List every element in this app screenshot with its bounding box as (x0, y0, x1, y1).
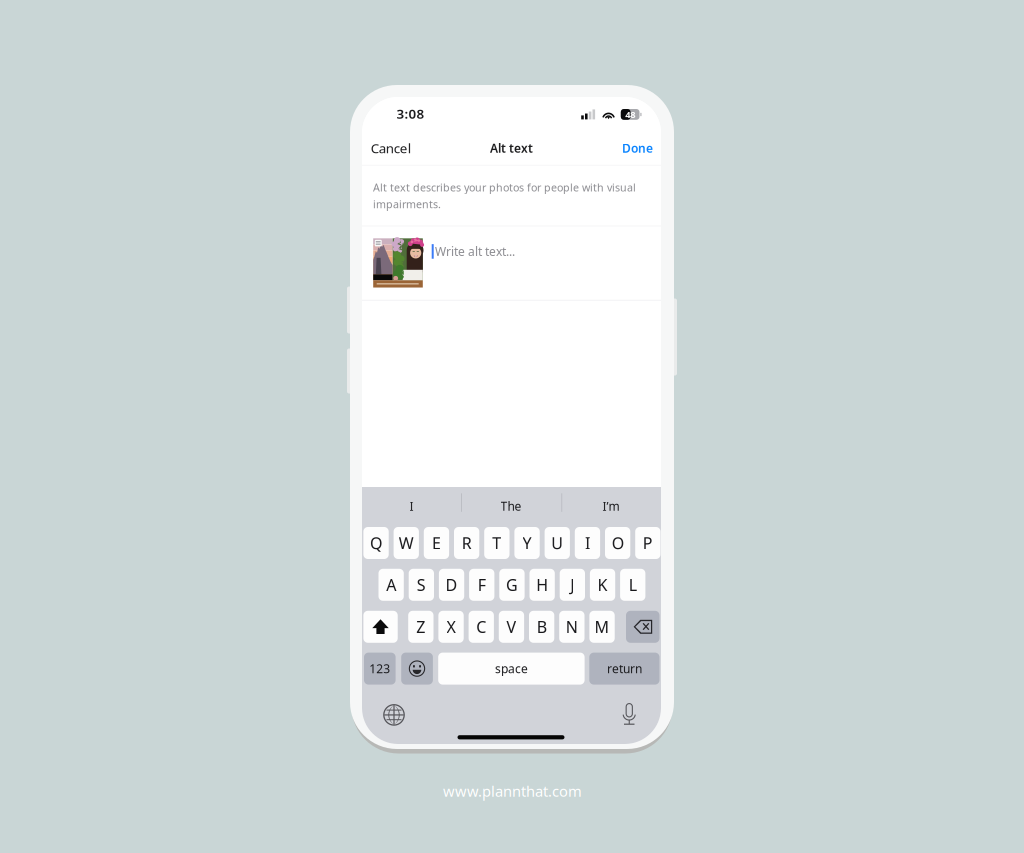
staticText: The (501, 498, 522, 514)
staticText: I (409, 498, 413, 514)
staticText: A (386, 574, 396, 595)
staticText: J (570, 574, 574, 595)
button[interactable]: I’m (561, 487, 660, 525)
staticText: space (495, 661, 528, 676)
staticText: W (399, 532, 414, 554)
button[interactable]: T (484, 527, 509, 559)
button[interactable]: K (590, 569, 615, 601)
staticText: 3:08 (397, 105, 425, 122)
staticText: D (445, 574, 457, 595)
button[interactable]: S (409, 569, 434, 601)
button[interactable]: Shift (363, 611, 398, 643)
button[interactable]: Q (363, 527, 389, 559)
button[interactable]: D (439, 569, 464, 601)
staticText: M (594, 616, 609, 637)
button[interactable]: B (529, 611, 554, 643)
button[interactable]: E (424, 527, 449, 559)
button[interactable]: Done (613, 131, 653, 165)
staticText: H (536, 574, 548, 595)
button[interactable]: F (469, 569, 494, 601)
button[interactable]: Cancel (371, 131, 427, 165)
staticText: T (492, 532, 501, 554)
button[interactable]: A (378, 569, 404, 601)
staticText: impairments. (373, 197, 441, 211)
staticText: L (629, 574, 637, 595)
staticText: X (446, 616, 455, 637)
button[interactable]: Y (514, 527, 540, 559)
staticText: 123 (369, 661, 390, 676)
staticText: I’m (602, 498, 619, 514)
staticText: return (607, 661, 642, 676)
staticText: Done (622, 140, 653, 156)
button[interactable]: 123 (364, 653, 396, 685)
staticText: I (585, 532, 590, 554)
staticText: G (506, 574, 518, 595)
button[interactable]: G (499, 569, 525, 601)
button[interactable]: Dictate (622, 703, 637, 725)
staticText: Z (416, 616, 425, 637)
button[interactable]: M (589, 611, 615, 643)
staticText: U (551, 532, 563, 554)
staticText: Alt text (490, 140, 533, 156)
button[interactable]: Z (408, 611, 433, 643)
button[interactable]: X (438, 611, 464, 643)
button[interactable]: P (635, 527, 660, 559)
staticText: K (597, 574, 607, 595)
button[interactable]: N (559, 611, 584, 643)
button[interactable]: Emoji (401, 653, 433, 685)
staticText: B (537, 616, 547, 637)
staticText: 48 (625, 108, 635, 121)
button[interactable]: I (362, 487, 461, 525)
staticText: Y (522, 532, 531, 554)
button[interactable]: The (461, 487, 561, 525)
staticText: O (612, 532, 624, 554)
staticText: S (417, 574, 426, 595)
button[interactable]: C (469, 611, 494, 643)
staticText: P (643, 532, 653, 554)
button[interactable]: H (529, 569, 555, 601)
button[interactable]: space (438, 653, 585, 685)
staticText: Q (370, 532, 382, 554)
staticText: R (462, 532, 472, 554)
staticText: F (478, 574, 486, 595)
button[interactable]: Delete (626, 611, 659, 643)
button[interactable]: U (545, 527, 570, 559)
staticText: V (506, 616, 516, 637)
staticText: Cancel (371, 139, 411, 157)
button[interactable]: Next keyboard (383, 704, 405, 725)
staticText: C (476, 616, 486, 637)
button[interactable]: O (605, 527, 630, 559)
button[interactable]: R (454, 527, 479, 559)
staticText: www.plannthat.com (443, 781, 582, 801)
staticText: E (432, 532, 441, 554)
staticText: Write alt text... (435, 243, 515, 259)
button[interactable]: return (589, 653, 659, 685)
staticText: N (566, 616, 578, 637)
button[interactable]: J (560, 569, 585, 601)
button[interactable]: L (620, 569, 645, 601)
button[interactable]: I (575, 527, 600, 559)
staticText: Alt text describes your photos for peopl… (373, 180, 636, 194)
button[interactable]: W (394, 527, 419, 559)
button[interactable]: V (499, 611, 524, 643)
